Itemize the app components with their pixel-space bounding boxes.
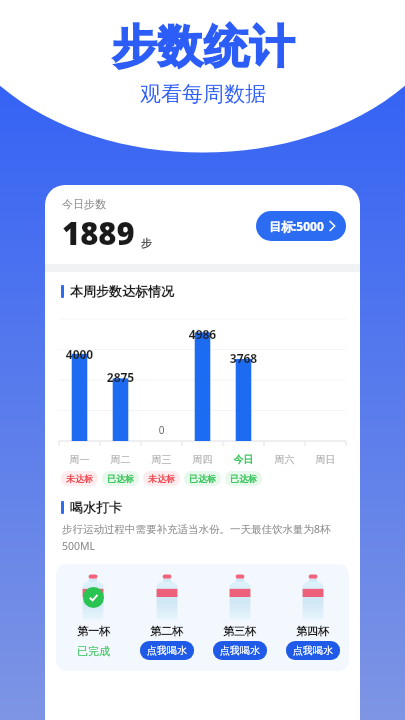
staticText: 已达标 xyxy=(189,473,216,484)
staticText: 周一 xyxy=(59,453,100,466)
staticText: 点我喝水 xyxy=(293,644,333,657)
staticText: 目标:5000 xyxy=(269,218,324,234)
staticText: 第二杯 xyxy=(150,624,183,638)
button[interactable]: 未达标 xyxy=(143,471,180,486)
staticText: 已达标 xyxy=(107,473,134,484)
button[interactable]: 点我喝水 xyxy=(286,641,340,660)
button[interactable]: 目标:5000 xyxy=(256,211,346,241)
staticText: 周六 xyxy=(264,453,305,466)
staticText: 今日 xyxy=(223,453,264,466)
staticText: 0 xyxy=(141,423,182,437)
staticText: 3768 xyxy=(223,350,264,366)
staticText: 已完成 xyxy=(77,644,110,658)
staticText: 点我喝水 xyxy=(220,644,260,657)
staticText: 今日步数 xyxy=(62,197,106,211)
staticText: 4000 xyxy=(59,346,100,362)
staticText: 喝水打卡 xyxy=(70,499,122,515)
staticText: 周日 xyxy=(305,453,346,466)
staticText: 本周步数达标情况 xyxy=(70,283,174,299)
button[interactable]: 已达标 xyxy=(225,471,262,486)
button[interactable]: 点我喝水 xyxy=(213,641,267,660)
staticText: 观看每周数据 xyxy=(140,81,266,107)
other: 已完成 xyxy=(83,587,104,608)
staticText: 步数统计 xyxy=(111,19,295,76)
staticText: 第一杯 xyxy=(77,624,110,638)
staticText: 第三杯 xyxy=(223,624,256,638)
staticText: 周三 xyxy=(141,453,182,466)
staticText: 已达标 xyxy=(230,473,257,484)
staticText: 4986 xyxy=(182,326,223,342)
staticText: 周二 xyxy=(100,453,141,466)
staticText: 周四 xyxy=(182,453,223,466)
button[interactable]: 已完成 xyxy=(71,641,116,661)
button[interactable]: 点我喝水 xyxy=(140,641,194,660)
button[interactable]: 已达标 xyxy=(184,471,221,486)
staticText: 点我喝水 xyxy=(147,644,187,657)
staticText: 步 xyxy=(141,236,152,250)
staticText: 未达标 xyxy=(148,473,175,484)
staticText: 2875 xyxy=(100,369,141,385)
staticText: 第四杯 xyxy=(296,624,329,638)
staticText: 步行运动过程中需要补充适当水份。一天最佳饮水量为8杯500ML xyxy=(62,522,340,553)
button[interactable]: 已达标 xyxy=(102,471,139,486)
button[interactable]: 未达标 xyxy=(61,471,98,486)
staticText: 未达标 xyxy=(66,473,93,484)
staticText: 1889 xyxy=(62,212,135,254)
